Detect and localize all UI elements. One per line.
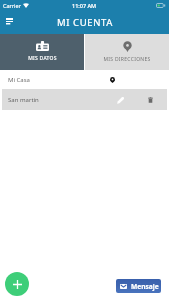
staticText: Carrier <box>3 2 21 9</box>
button[interactable]: Mensaje <box>116 279 161 293</box>
button[interactable]: Eliminar <box>143 93 157 107</box>
button[interactable]: Ubicacion <box>105 73 119 87</box>
staticText: MI CUENTA <box>57 16 113 29</box>
button[interactable]: Agregar direccion <box>5 272 29 296</box>
button[interactable]: MIS DATOS <box>0 34 84 70</box>
staticText: Mensaje <box>131 282 159 291</box>
button[interactable]: Editar <box>113 93 127 107</box>
staticText: 11:07 AM <box>72 2 97 9</box>
staticText: San martin <box>8 96 39 104</box>
button[interactable]: Menu <box>2 14 17 29</box>
button[interactable]: San martin <box>2 89 167 110</box>
button[interactable]: Mi Casa <box>2 71 167 89</box>
button[interactable]: MIS DIRECCIONES <box>85 34 169 70</box>
staticText: MIS DIRECCIONES <box>103 56 151 63</box>
staticText: MIS DATOS <box>28 55 57 62</box>
staticText: Mi Casa <box>8 76 30 84</box>
